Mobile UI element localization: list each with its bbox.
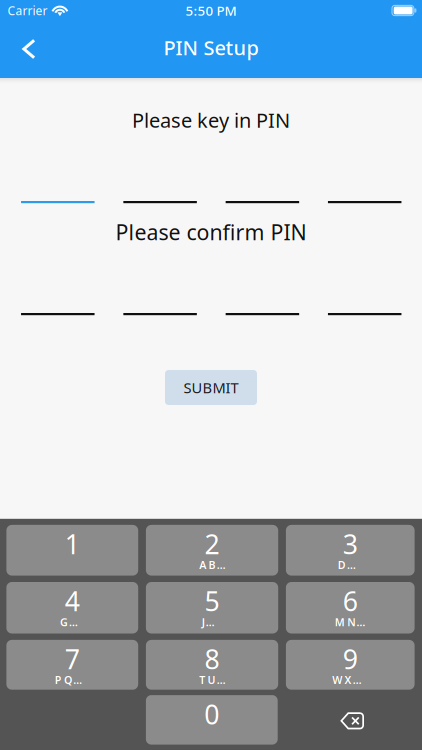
staticText: 1 (65, 526, 80, 562)
staticText: TUV (199, 673, 225, 687)
staticText: 2 (205, 526, 220, 562)
button[interactable]: 6 (286, 582, 415, 633)
staticText: 4 (65, 583, 80, 619)
staticText: 6 (343, 583, 358, 619)
staticText: MNO (335, 615, 366, 629)
staticText: PQRS (55, 673, 90, 687)
staticText: ABC (199, 558, 225, 572)
button[interactable]: 5 (146, 582, 278, 633)
button[interactable]: 1 (6, 525, 138, 576)
staticText: SUBMIT (183, 378, 238, 397)
button[interactable]: 2 (146, 525, 278, 576)
staticText: WXYZ (332, 673, 368, 687)
staticText: Please confirm PIN (115, 218, 306, 246)
button[interactable]: 9 (286, 640, 415, 690)
staticText: 5 (205, 583, 220, 619)
staticText: 0 (204, 696, 219, 732)
staticText: DEF (338, 558, 363, 572)
button[interactable]: SUBMIT (165, 370, 257, 405)
button[interactable]: 0 (146, 695, 278, 745)
button[interactable]: 7 (6, 640, 138, 690)
staticText: 5:50 PM (185, 2, 236, 19)
staticText: PIN Setup (163, 34, 258, 61)
staticText: GHI (60, 615, 85, 629)
button[interactable]: Back (0, 27, 52, 71)
button[interactable]: 3 (286, 525, 415, 576)
button[interactable]: Delete (285, 695, 414, 745)
staticText: Please key in PIN (132, 107, 290, 133)
staticText: 9 (343, 641, 358, 677)
staticText: 8 (205, 641, 220, 677)
button[interactable]: 8 (146, 640, 278, 690)
staticText: JKL (202, 615, 222, 629)
staticText: 3 (343, 526, 358, 562)
button[interactable]: 4 (6, 582, 138, 633)
staticText: Carrier (7, 2, 47, 18)
staticText: 7 (65, 641, 80, 677)
